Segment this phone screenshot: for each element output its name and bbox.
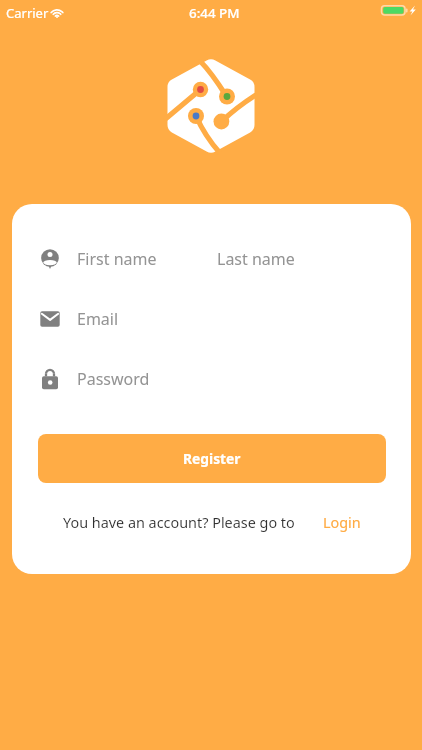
staticText: Register (183, 449, 241, 468)
button[interactable]: Email (34, 299, 374, 339)
button[interactable]: Register (38, 434, 386, 483)
staticText: First name (77, 248, 157, 270)
staticText: Login (323, 513, 361, 533)
staticText: Last name (217, 248, 295, 270)
button[interactable]: Login (323, 513, 361, 533)
staticText: You have an account? Please go to (63, 513, 295, 533)
button[interactable]: Last name (207, 239, 367, 279)
staticText: Carrier (6, 4, 49, 22)
staticText: Email (77, 308, 119, 330)
staticText: 6:44 PM (189, 4, 240, 22)
button[interactable]: Password (34, 359, 374, 399)
staticText: Password (77, 368, 150, 390)
button[interactable]: First name (34, 239, 194, 279)
